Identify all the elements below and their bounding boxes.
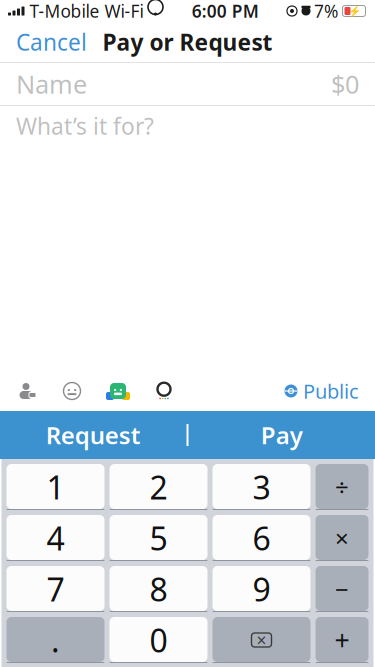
- staticText: 7: [46, 568, 64, 610]
- staticText: .: [51, 619, 60, 661]
- button[interactable]: −: [315, 566, 368, 612]
- button[interactable]: Pay: [188, 411, 375, 459]
- staticText: Name: [16, 67, 87, 101]
- button[interactable]: 3: [212, 464, 310, 510]
- button[interactable]: More: [154, 381, 174, 400]
- staticText: 7%: [314, 0, 338, 22]
- staticText: 5: [149, 517, 167, 559]
- staticText: 2: [149, 466, 167, 508]
- staticText: 9: [252, 568, 270, 610]
- staticText: 6: [252, 517, 270, 559]
- staticText: Public: [303, 378, 359, 404]
- button[interactable]: Delete: [212, 617, 310, 663]
- button[interactable]: GIF: [108, 382, 128, 400]
- button[interactable]: 8: [109, 566, 207, 612]
- button[interactable]: Emoji: [62, 382, 82, 400]
- button[interactable]: .: [6, 617, 104, 663]
- staticText: Pay: [261, 419, 303, 451]
- button[interactable]: 2: [109, 464, 207, 510]
- button[interactable]: ×: [315, 515, 368, 561]
- staticText: ×: [256, 628, 266, 651]
- staticText: 3: [252, 466, 270, 508]
- button[interactable]: ÷: [315, 464, 368, 510]
- staticText: ÷: [335, 471, 349, 503]
- button[interactable]: 5: [109, 515, 207, 561]
- staticText: 8: [149, 568, 167, 610]
- staticText: 1: [46, 466, 64, 508]
- staticText: What’s it for?: [16, 111, 154, 141]
- button[interactable]: Public: [284, 378, 359, 404]
- button[interactable]: 4: [6, 515, 104, 561]
- staticText: Pay or Request: [102, 27, 272, 57]
- staticText: ⚡: [347, 5, 360, 17]
- button[interactable]: 6: [212, 515, 310, 561]
- staticText: 0: [149, 619, 167, 661]
- button[interactable]: Request: [0, 411, 186, 459]
- button[interactable]: +: [315, 617, 368, 663]
- staticText: ×: [335, 522, 349, 554]
- button[interactable]: Cancel: [0, 17, 103, 67]
- button[interactable]: 7: [6, 566, 104, 612]
- button[interactable]: 0: [109, 617, 207, 663]
- staticText: $0: [331, 67, 359, 101]
- staticText: Cancel: [16, 27, 87, 57]
- button[interactable]: 1: [6, 464, 104, 510]
- staticText: −: [335, 573, 349, 605]
- staticText: T-Mobile Wi-Fi: [29, 0, 143, 22]
- button[interactable]: 9: [212, 566, 310, 612]
- staticText: +: [334, 622, 349, 658]
- staticText: Request: [46, 419, 141, 451]
- button[interactable]: Add person: [16, 382, 36, 400]
- staticText: 4: [46, 517, 64, 559]
- staticText: 6:00 PM: [192, 0, 259, 22]
